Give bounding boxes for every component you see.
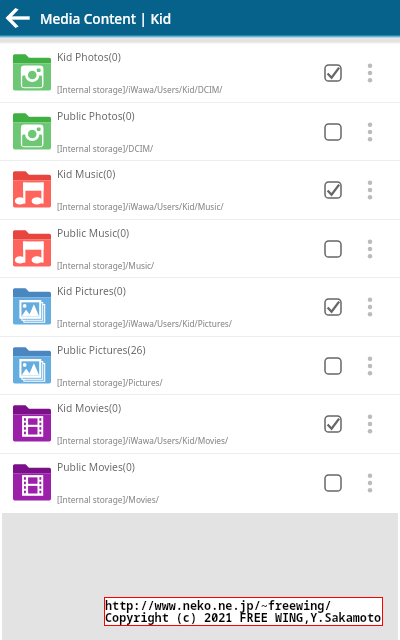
button[interactable]: More options: [356, 469, 384, 497]
staticText: [Internal storage]/iWawa/Users/Kid/DCIM/: [57, 84, 317, 95]
staticText: Kid Pictures(0): [57, 284, 126, 298]
button[interactable]: Select folder: [319, 176, 347, 204]
staticText: [Internal storage]/iWawa/Users/Kid/Pictu…: [57, 318, 317, 329]
staticText: Public Pictures(26): [57, 343, 146, 357]
staticText: Kid Movies(0): [57, 401, 122, 415]
button[interactable]: More options: [356, 410, 384, 438]
button[interactable]: Select folder: [319, 410, 347, 438]
button[interactable]: More options: [356, 352, 384, 380]
button[interactable]: Public Music(0): [0, 220, 400, 278]
button[interactable]: Select folder: [319, 293, 347, 321]
button[interactable]: Select folder: [319, 352, 347, 380]
button[interactable]: Select folder: [319, 59, 347, 87]
button[interactable]: Select folder: [319, 469, 347, 497]
staticText: Public Photos(0): [57, 109, 135, 123]
staticText: Kid Music(0): [57, 167, 116, 181]
staticText: Media Content | Kid: [40, 9, 172, 28]
staticText: [Internal storage]/iWawa/Users/Kid/Movie…: [57, 435, 317, 446]
staticText: [Internal storage]/Movies/: [57, 494, 317, 505]
button[interactable]: More options: [356, 293, 384, 321]
button[interactable]: Public Movies(0): [0, 454, 400, 512]
button[interactable]: Public Photos(0): [0, 103, 400, 161]
staticText: [Internal storage]/Pictures/: [57, 377, 317, 388]
staticText: Kid Photos(0): [57, 50, 121, 64]
staticText: Public Music(0): [57, 226, 130, 240]
button[interactable]: More options: [356, 59, 384, 87]
button[interactable]: Kid Photos(0): [0, 44, 400, 102]
button[interactable]: Kid Music(0): [0, 161, 400, 219]
button[interactable]: Kid Movies(0): [0, 395, 400, 453]
staticText: [Internal storage]/Music/: [57, 260, 317, 271]
button[interactable]: More options: [356, 235, 384, 263]
staticText: Public Movies(0): [57, 460, 135, 474]
button[interactable]: More options: [356, 176, 384, 204]
button[interactable]: Select folder: [319, 235, 347, 263]
button[interactable]: Select folder: [319, 118, 347, 146]
button[interactable]: Back: [0, 0, 35, 35]
staticText: [Internal storage]/iWawa/Users/Kid/Music…: [57, 201, 317, 212]
staticText: [Internal storage]/DCIM/: [57, 143, 317, 154]
staticText: http://www.neko.ne.jp/~freewing/ Copyrig…: [105, 597, 382, 626]
button[interactable]: Kid Pictures(0): [0, 278, 400, 336]
button[interactable]: More options: [356, 118, 384, 146]
button[interactable]: Public Pictures(26): [0, 337, 400, 395]
